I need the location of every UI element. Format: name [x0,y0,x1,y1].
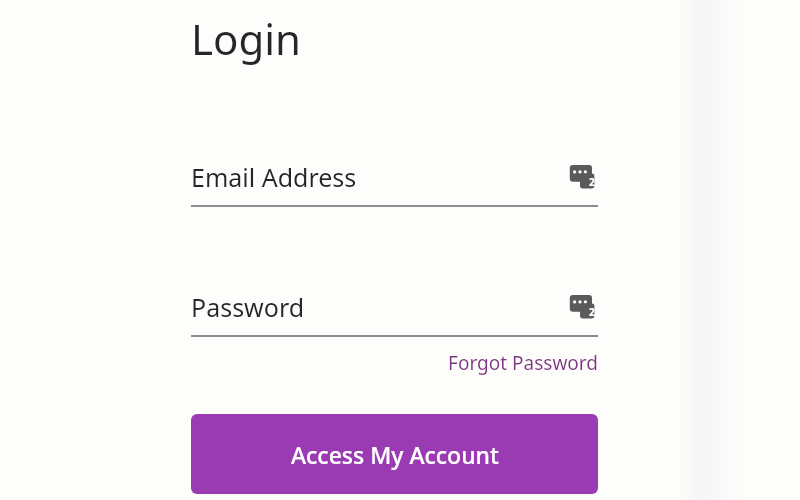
staticText: 2 [589,305,595,319]
staticText: 2 [589,175,595,189]
button[interactable]: Email Address [191,160,598,194]
button[interactable]: Access My Account [191,414,598,494]
staticText: Access My Account [291,439,499,470]
staticText: Password [191,290,568,324]
button[interactable]: Autofill suggestions [568,292,598,322]
button[interactable]: Autofill suggestions [568,162,598,192]
staticText: Login [191,10,302,67]
button[interactable]: Forgot Password [191,350,598,376]
staticText: Email Address [191,160,568,194]
button[interactable]: Password [191,290,598,324]
